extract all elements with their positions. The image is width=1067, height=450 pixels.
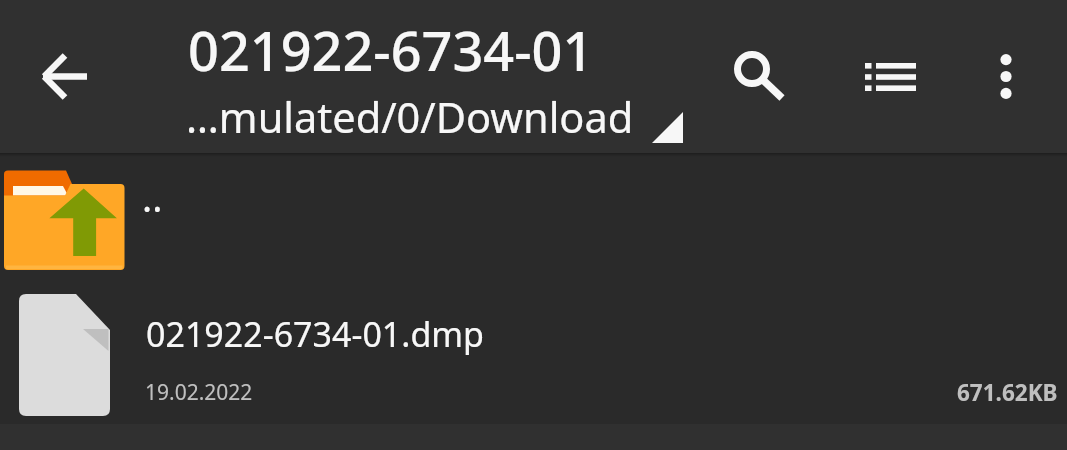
staticText: 021922-6734-01.dmp [146, 311, 484, 357]
staticText: …mulated/0/Download [186, 89, 634, 146]
button[interactable]: 021922-6734-01 [176, 8, 696, 146]
staticText: 021922-6734-01 [188, 13, 594, 87]
button[interactable]: Back [20, 32, 108, 120]
button[interactable]: More options [962, 32, 1050, 120]
button[interactable]: Search [708, 29, 796, 117]
button[interactable]: .. [0, 154, 1067, 288]
staticText: .. [142, 171, 163, 223]
button[interactable]: View mode [846, 33, 934, 121]
staticText: 19.02.2022 [145, 378, 253, 407]
staticText: 671.62KB [957, 377, 1058, 408]
button[interactable]: 021922-6734-01.dmp [0, 288, 1067, 424]
